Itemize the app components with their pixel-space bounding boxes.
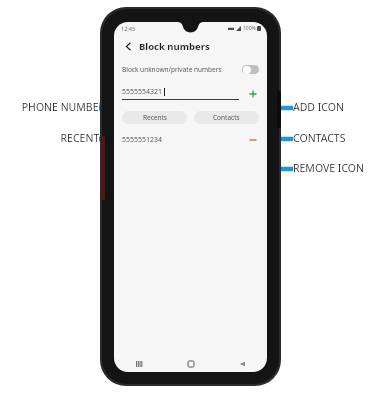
staticText: 12:45 — [121, 25, 136, 32]
staticText: RECENTS — [4, 131, 105, 145]
button[interactable]: Home — [165, 356, 216, 372]
staticText: CONTACTS — [293, 131, 380, 145]
staticText: 100% — [243, 25, 256, 32]
button[interactable]: Remove number — [247, 134, 259, 146]
staticText: Recents — [143, 113, 167, 122]
staticText: REMOVE ICON — [293, 161, 380, 175]
staticText: PHONE NUMBER — [4, 100, 105, 114]
staticText: Block unknown/private numbers — [122, 65, 222, 74]
staticText: ADD ICON — [293, 100, 380, 114]
button[interactable]: 5555551234 — [114, 133, 267, 147]
button[interactable]: Block unknown/private numbers — [114, 61, 267, 77]
button[interactable]: Add number — [247, 88, 259, 100]
button[interactable]: Contacts — [194, 111, 259, 124]
staticText: 5555551234 — [122, 135, 163, 145]
staticText: Contacts — [213, 113, 240, 122]
button[interactable]: Back — [120, 38, 136, 54]
button[interactable]: Back — [216, 356, 267, 372]
button[interactable]: Recents — [122, 111, 187, 124]
button[interactable]: Recent apps — [114, 356, 165, 372]
staticText: 5555554321 — [122, 87, 163, 97]
staticText: Block numbers — [139, 40, 210, 53]
